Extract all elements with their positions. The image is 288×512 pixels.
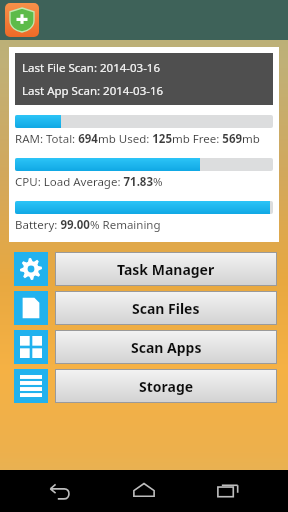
other: Scan Files	[14, 291, 48, 325]
staticText: CPU: Load Average: 71.83%	[15, 174, 163, 190]
staticText: Task Manager	[117, 260, 215, 279]
button[interactable]: Scan Files	[14, 291, 277, 325]
staticText: Scan Apps	[131, 338, 202, 357]
button[interactable]: Back	[36, 470, 84, 512]
button[interactable]: Recent apps	[204, 470, 252, 512]
button[interactable]: App icon	[5, 3, 39, 37]
staticText: Last File Scan: 2014-03-16	[22, 60, 160, 76]
staticText: Battery: 99.00% Remaining	[15, 217, 161, 233]
button[interactable]: Scan Apps	[14, 330, 277, 364]
button[interactable]: Task Manager	[14, 252, 277, 286]
staticText: Scan Files	[132, 299, 200, 318]
other: Storage	[14, 369, 48, 403]
other: Scan Apps	[14, 330, 48, 364]
button[interactable]: Storage	[14, 369, 277, 403]
other: Task Manager	[14, 252, 48, 286]
staticText: Storage	[139, 377, 194, 396]
staticText: RAM: Total: 694mb Used: 125mb Free: 569m…	[15, 131, 260, 147]
button[interactable]: Home	[120, 470, 168, 512]
staticText: Last App Scan: 2014-03-16	[22, 83, 164, 99]
